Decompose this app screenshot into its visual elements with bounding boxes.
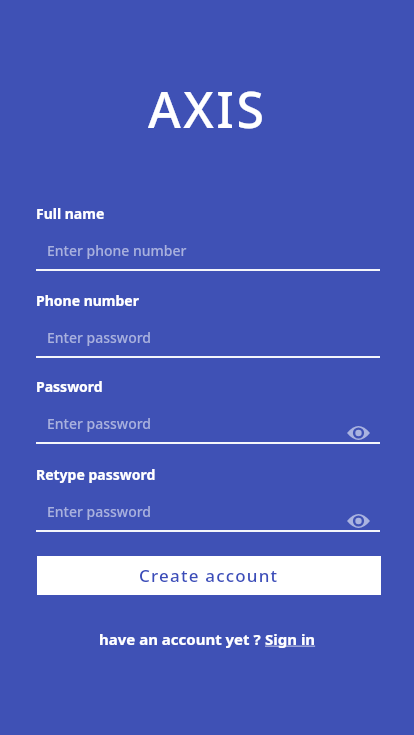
staticText: AXIS	[148, 75, 267, 143]
staticText: Password	[36, 377, 103, 396]
button[interactable]	[347, 426, 370, 440]
staticText: have an account yet ?	[99, 629, 265, 649]
staticText: Enter password	[47, 328, 152, 347]
staticText: Enter password	[47, 414, 152, 433]
staticText: Retype password	[36, 465, 156, 484]
staticText: Phone number	[36, 291, 139, 310]
button[interactable]: Sign in	[265, 629, 316, 649]
staticText: Enter phone number	[47, 241, 187, 260]
button[interactable]	[347, 514, 370, 528]
button[interactable]: Create account	[37, 556, 381, 595]
staticText: Full name	[36, 204, 105, 223]
staticText: Create account	[139, 564, 279, 587]
staticText: Enter password	[47, 502, 152, 521]
